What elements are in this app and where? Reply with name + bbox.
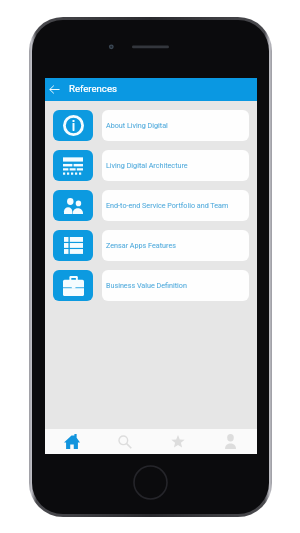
button[interactable]: Living Digital Architecture (45, 150, 257, 181)
button[interactable]: End-to-end Service Portfolio and Team (45, 190, 257, 221)
button[interactable]: Search (98, 429, 151, 454)
button[interactable]: About Living Digital (45, 110, 257, 141)
staticText: End-to-end Service Portfolio and Team (106, 201, 229, 209)
staticText: References (69, 83, 117, 94)
button[interactable]: Business Value Definition (45, 270, 257, 301)
button[interactable]: Zensar Apps Features (45, 230, 257, 261)
button[interactable]: Home (45, 429, 98, 454)
staticText: Zensar Apps Features (106, 241, 176, 249)
button[interactable]: Favorites (151, 429, 204, 454)
button[interactable]: Back (45, 78, 64, 101)
button[interactable]: Profile (204, 429, 257, 454)
staticText: About Living Digital (106, 121, 168, 129)
staticText: Living Digital Architecture (106, 161, 188, 169)
staticText: Business Value Definition (106, 281, 187, 289)
